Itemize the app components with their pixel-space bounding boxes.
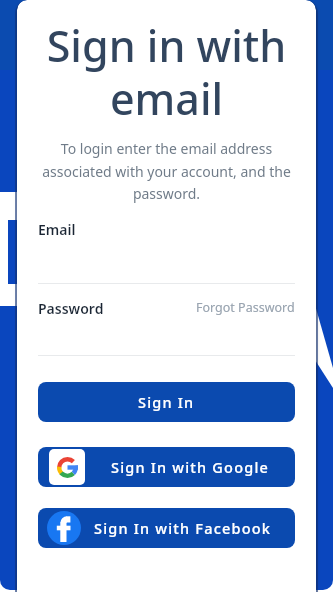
- staticText: Sign In with Facebook: [94, 518, 272, 538]
- staticText: Sign In with Google: [111, 457, 270, 477]
- staticText: Sign in with email: [17, 16, 316, 127]
- button[interactable]: Sign In: [38, 382, 295, 422]
- staticText: Sign In: [138, 392, 195, 412]
- staticText: Password: [38, 299, 196, 318]
- staticText: Email: [38, 220, 76, 239]
- button[interactable]: Sign In with Google: [38, 447, 295, 487]
- button[interactable]: Sign In with Facebook: [38, 508, 295, 548]
- button[interactable]: Forgot Password: [196, 299, 295, 316]
- staticText: To login enter the email address associa…: [17, 139, 316, 203]
